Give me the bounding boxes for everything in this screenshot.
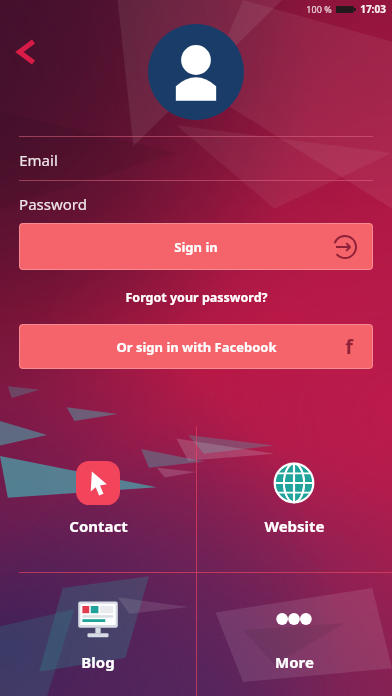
staticText: Blog xyxy=(81,652,115,672)
staticText: Website xyxy=(264,516,325,536)
button[interactable]: Sign in xyxy=(19,223,373,270)
button[interactable]: Forgot your password? xyxy=(19,289,373,306)
button[interactable]: Contact xyxy=(0,424,196,572)
staticText: Forgot your password? xyxy=(125,289,268,306)
staticText: Contact xyxy=(69,516,128,536)
button[interactable]: More xyxy=(196,572,392,696)
staticText: Email xyxy=(19,150,58,170)
staticText: 100 % xyxy=(306,3,332,15)
staticText: f xyxy=(345,333,353,360)
button[interactable]: Blog xyxy=(0,572,196,696)
staticText: 17:03 xyxy=(360,2,386,16)
staticText: Password xyxy=(19,194,87,214)
staticText: More xyxy=(275,652,314,672)
staticText: Or sign in with Facebook xyxy=(116,338,277,356)
button[interactable]: Or sign in with Facebook xyxy=(19,324,373,369)
staticText: Sign in xyxy=(174,238,218,256)
button[interactable]: Back xyxy=(8,30,52,74)
button[interactable]: Profile avatar xyxy=(148,24,244,120)
button[interactable]: Website xyxy=(196,424,392,572)
